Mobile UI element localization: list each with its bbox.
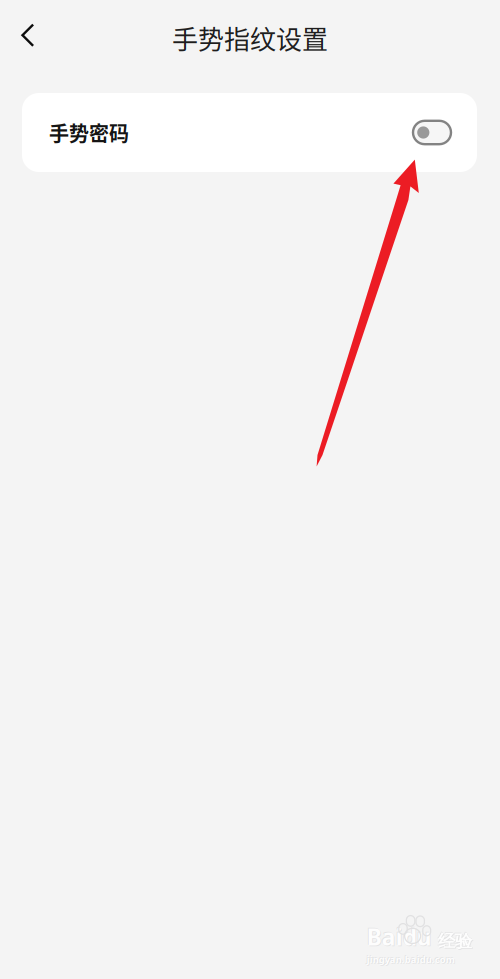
button[interactable]: 手势密码 [22, 93, 477, 172]
staticText: 手势指纹设置 [172, 19, 328, 57]
staticText: 经验 [439, 931, 473, 952]
staticText: Baidu [367, 922, 432, 952]
staticText: 经验 [437, 930, 471, 951]
staticText: 手势密码 [49, 118, 129, 147]
staticText: jingyan.baidu.com [366, 952, 454, 965]
button[interactable]: 手势密码, off [413, 121, 451, 144]
staticText: Baidu [366, 921, 431, 951]
staticText: jingyan.baidu.com [367, 953, 455, 966]
staticText: Baidu [367, 922, 432, 952]
staticText: 经验 [438, 930, 472, 952]
button[interactable]: Back [0, 16, 50, 54]
staticText: jingyan.baidu.com [367, 954, 455, 966]
